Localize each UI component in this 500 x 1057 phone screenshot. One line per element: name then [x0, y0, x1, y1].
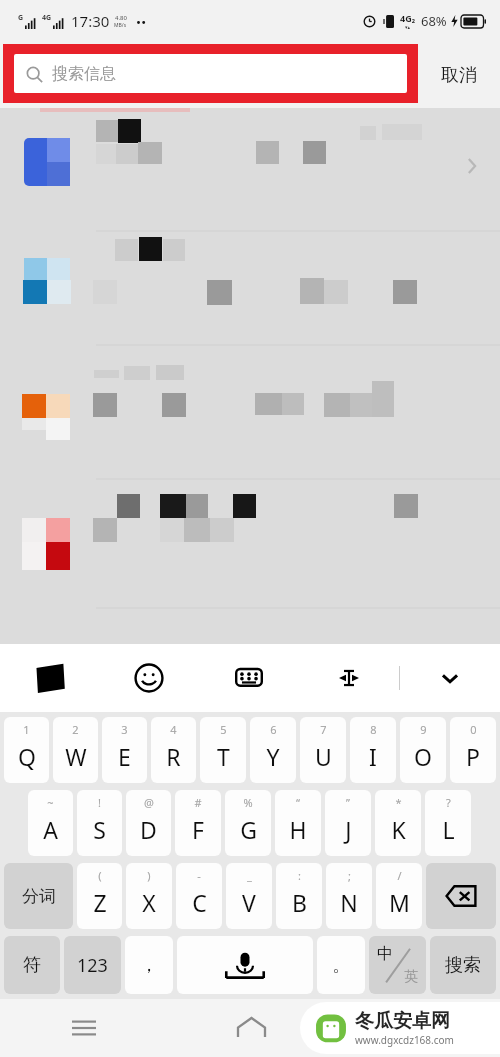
- staticText: MB/s: [114, 22, 127, 29]
- button[interactable]: Emoji: [99, 644, 199, 712]
- button[interactable]: 123: [64, 936, 121, 994]
- staticText: Z: [93, 887, 107, 918]
- staticText: 搜索: [445, 954, 481, 977]
- button[interactable]: 5: [200, 717, 246, 783]
- button[interactable]: 搜索信息: [3, 44, 418, 103]
- staticText: 9: [420, 722, 427, 737]
- staticText: %: [243, 795, 253, 810]
- staticText: ~: [47, 795, 54, 810]
- button[interactable]: ，: [125, 936, 173, 994]
- staticText: *: [395, 795, 402, 810]
- staticText: 英: [404, 968, 418, 986]
- staticText: 0: [470, 722, 477, 737]
- staticText: 8: [370, 722, 377, 737]
- button[interactable]: 2: [53, 717, 98, 783]
- button[interactable]: 6: [250, 717, 296, 783]
- staticText: /: [397, 868, 402, 883]
- button[interactable]: 8: [350, 717, 396, 783]
- staticText: :: [298, 868, 301, 883]
- staticText: ▾▴: [405, 24, 411, 30]
- button[interactable]: 9: [400, 717, 446, 783]
- staticText: ，: [140, 954, 158, 977]
- button[interactable]: !: [77, 790, 122, 856]
- staticText: T: [217, 741, 230, 772]
- staticText: J: [345, 814, 352, 845]
- staticText: A: [43, 814, 58, 845]
- staticText: 1: [23, 722, 30, 737]
- button[interactable]: :: [276, 863, 322, 929]
- staticText: 4G₂: [400, 12, 416, 24]
- button[interactable]: Backspace: [426, 863, 496, 929]
- button[interactable]: 分词: [4, 863, 73, 929]
- staticText: 2: [72, 722, 79, 737]
- staticText: V: [242, 887, 256, 918]
- staticText: M: [389, 887, 410, 918]
- staticText: 搜索信息: [52, 64, 116, 84]
- button[interactable]: %: [225, 790, 271, 856]
- button[interactable]: Home: [228, 1005, 274, 1051]
- button[interactable]: ~: [28, 790, 73, 856]
- button[interactable]: ;: [326, 863, 372, 929]
- button[interactable]: Recent apps: [62, 1006, 106, 1050]
- staticText: “: [296, 795, 300, 810]
- staticText: B: [292, 887, 307, 918]
- button[interactable]: Space, voice input: [177, 936, 313, 994]
- staticText: (: [98, 868, 102, 883]
- staticText: U: [315, 741, 332, 772]
- staticText: ): [147, 868, 151, 883]
- staticText: L: [442, 814, 455, 845]
- staticText: Q: [18, 741, 36, 772]
- staticText: @: [144, 795, 154, 810]
- staticText: 取消: [441, 64, 477, 87]
- button[interactable]: 0: [450, 717, 496, 783]
- staticText: 4: [170, 722, 177, 737]
- button[interactable]: 取消: [418, 42, 500, 108]
- button[interactable]: 4: [151, 717, 196, 783]
- staticText: D: [140, 814, 157, 845]
- staticText: F: [192, 814, 204, 845]
- button[interactable]: -: [176, 863, 222, 929]
- staticText: 6: [270, 722, 277, 737]
- button[interactable]: 3: [102, 717, 147, 783]
- button[interactable]: Keyboard layout: [199, 644, 299, 712]
- button[interactable]: ): [126, 863, 172, 929]
- button[interactable]: 符: [4, 936, 60, 994]
- button[interactable]: 7: [300, 717, 346, 783]
- button[interactable]: 搜索: [430, 936, 496, 994]
- staticText: ?: [446, 795, 451, 810]
- staticText: 。: [332, 954, 350, 977]
- staticText: 68%: [421, 12, 447, 30]
- button[interactable]: (: [77, 863, 122, 929]
- staticText: -: [197, 868, 201, 883]
- button[interactable]: 1: [4, 717, 49, 783]
- staticText: 符: [23, 954, 41, 977]
- staticText: Y: [266, 741, 280, 772]
- staticText: !: [98, 795, 101, 810]
- staticText: N: [340, 887, 358, 918]
- staticText: 4G: [42, 13, 52, 23]
- staticText: C: [192, 887, 207, 918]
- button[interactable]: Hide keyboard: [400, 644, 500, 712]
- button[interactable]: Chinese English toggle: [369, 936, 426, 994]
- button[interactable]: Sogou input: [0, 644, 99, 712]
- button[interactable]: _: [226, 863, 272, 929]
- staticText: 4.80: [115, 14, 127, 22]
- staticText: _: [247, 868, 252, 883]
- button[interactable]: “: [275, 790, 321, 856]
- staticText: 123: [77, 953, 108, 978]
- button[interactable]: ?: [425, 790, 471, 856]
- staticText: 冬瓜安卓网: [355, 1009, 450, 1033]
- button[interactable]: *: [375, 790, 421, 856]
- staticText: W: [65, 741, 87, 772]
- button[interactable]: 。: [317, 936, 365, 994]
- staticText: 5: [220, 722, 227, 737]
- staticText: #: [194, 795, 202, 810]
- button[interactable]: @: [126, 790, 171, 856]
- button[interactable]: Move cursor: [299, 644, 399, 712]
- staticText: S: [93, 814, 106, 845]
- button[interactable]: ”: [325, 790, 371, 856]
- button[interactable]: #: [175, 790, 221, 856]
- button[interactable]: /: [376, 863, 422, 929]
- staticText: P: [466, 741, 480, 772]
- staticText: G: [18, 13, 24, 23]
